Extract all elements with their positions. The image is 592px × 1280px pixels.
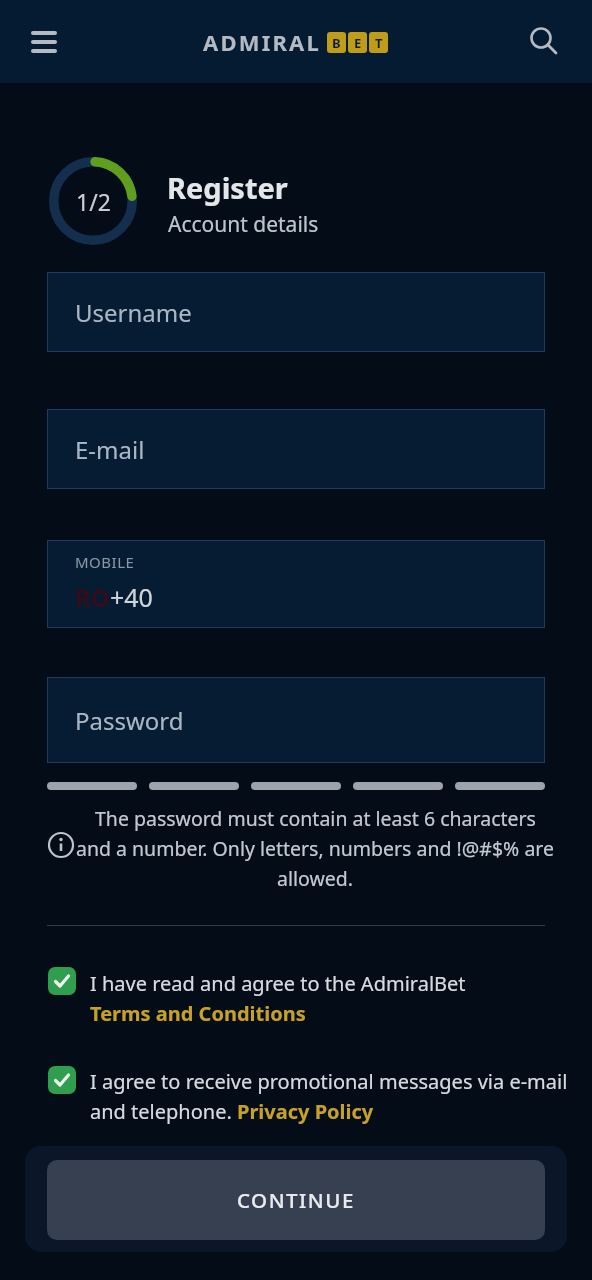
button[interactable]: CONTINUE (47, 1160, 545, 1240)
staticText: Username (75, 296, 192, 329)
staticText: RO (75, 581, 110, 614)
staticText: 1/2 (76, 186, 111, 217)
button[interactable]: E-mail (47, 409, 545, 489)
staticText: +40 (110, 580, 153, 614)
staticText: MOBILE (75, 552, 135, 572)
button[interactable]: Username (47, 272, 545, 352)
staticText: ADMIRAL (203, 27, 321, 57)
button[interactable]: Terms and Conditions (90, 1000, 306, 1027)
button[interactable] (48, 1066, 76, 1094)
button[interactable] (25, 25, 63, 59)
button[interactable]: MOBILE (47, 540, 545, 628)
staticText: I have read and agree to the AdmiralBet (90, 970, 466, 997)
button[interactable] (526, 24, 562, 60)
staticText: I agree to receive promotional messages … (90, 1068, 568, 1095)
button[interactable] (48, 967, 76, 995)
staticText: The password must contain at least 6 cha… (95, 805, 536, 832)
staticText: Password (75, 704, 184, 737)
staticText: CONTINUE (237, 1186, 355, 1214)
staticText: allowed. (277, 865, 353, 892)
staticText: and a number. Only letters, numbers and … (76, 835, 554, 862)
staticText: Register (167, 168, 288, 207)
staticText: and telephone. (90, 1098, 237, 1125)
button[interactable]: Password (47, 677, 545, 763)
staticText: E-mail (75, 433, 145, 466)
staticText: Account details (168, 210, 319, 239)
button[interactable]: Privacy Policy (237, 1098, 374, 1125)
staticText: B (332, 34, 341, 52)
staticText: E (354, 34, 362, 52)
staticText: T (375, 34, 383, 52)
